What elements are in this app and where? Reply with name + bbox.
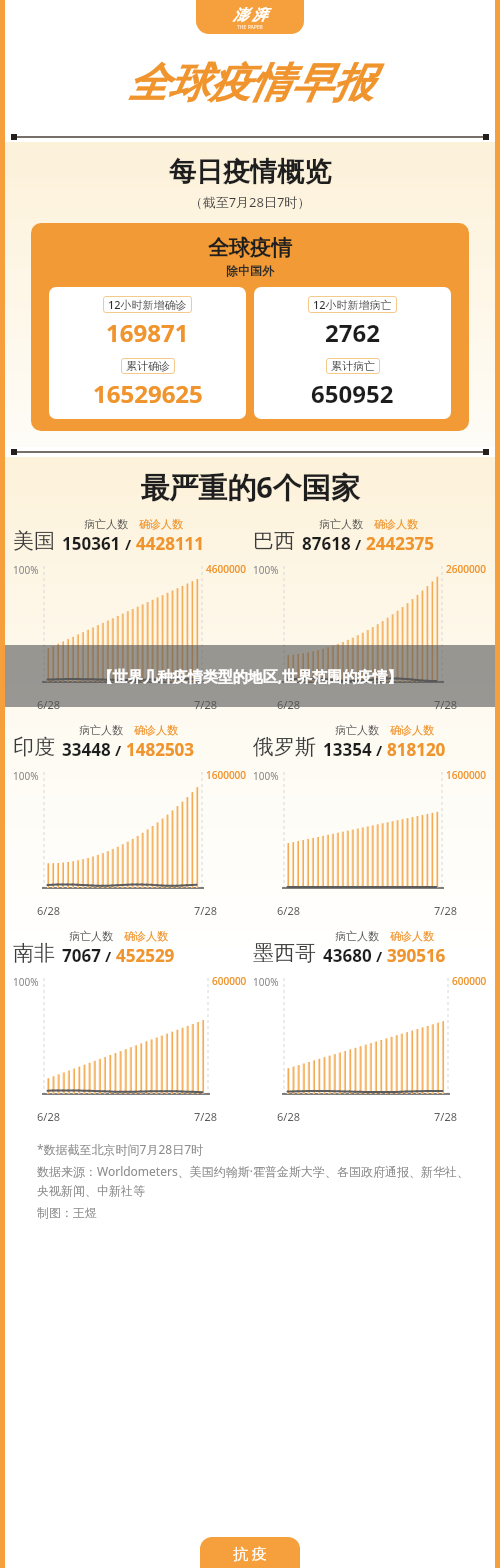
staticText: 7/28 — [434, 697, 457, 712]
staticText: 每日疫情概览 — [5, 155, 495, 189]
staticText: 确诊人数 — [124, 929, 168, 943]
staticText: 6/28 — [37, 1109, 60, 1124]
staticText: 100% — [13, 563, 39, 577]
staticText: 制图：王煜 — [37, 1205, 97, 1220]
staticText: 4428111 — [136, 532, 205, 555]
staticText: 累计确诊 — [126, 359, 170, 373]
staticText: 43680 — [323, 944, 372, 967]
staticText: 650952 — [311, 377, 394, 410]
staticText: 818120 — [387, 738, 446, 761]
staticText: / — [101, 946, 116, 966]
staticText: 2600000 — [446, 562, 487, 576]
staticText: 6/28 — [37, 697, 60, 712]
staticText: 169871 — [106, 316, 189, 349]
staticText: 100% — [253, 975, 279, 989]
staticText: 13354 — [323, 738, 372, 761]
staticText: 抗 疫 — [233, 1543, 267, 1563]
staticText: / — [351, 534, 366, 554]
staticText: 印度 — [13, 734, 55, 760]
staticText: 2762 — [325, 316, 380, 349]
staticText: 【世界几种疫情类型的地区,世界范围的疫情】 — [33, 666, 467, 686]
staticText: 确诊人数 — [134, 723, 178, 737]
staticText: 病亡人数 — [84, 517, 128, 531]
staticText: 除中国外 — [226, 263, 274, 278]
staticText: 确诊人数 — [374, 517, 418, 531]
staticText: 100% — [253, 769, 279, 783]
button[interactable]: 全球疫情 — [31, 223, 469, 431]
button[interactable]: 澎湃新闻 The Paper — [196, 0, 304, 34]
staticText: THE PAPER — [237, 24, 263, 31]
staticText: / — [111, 740, 126, 760]
staticText: 确诊人数 — [390, 723, 434, 737]
staticText: 87618 — [302, 532, 351, 555]
staticText: 俄罗斯 — [253, 734, 316, 760]
staticText: 全球疫情 — [208, 235, 292, 261]
staticText: 7/28 — [434, 903, 457, 918]
staticText: 7/28 — [194, 697, 217, 712]
staticText: 1600000 — [206, 768, 247, 782]
staticText: *数据截至北京时间7月28日7时 — [37, 1141, 204, 1157]
staticText: 100% — [253, 563, 279, 577]
staticText: 100% — [13, 975, 39, 989]
staticText: 452529 — [116, 944, 175, 967]
staticText: 7/28 — [194, 903, 217, 918]
staticText: 病亡人数 — [335, 929, 379, 943]
staticText: 150361 — [62, 532, 121, 555]
staticText: 全球疫情早报 — [127, 58, 373, 110]
staticText: 巴西 — [253, 528, 295, 554]
staticText: 6/28 — [277, 903, 300, 918]
staticText: 累计病亡 — [331, 359, 375, 373]
staticText: 墨西哥 — [253, 940, 316, 966]
staticText: 600000 — [212, 974, 247, 988]
staticText: 2442375 — [366, 532, 435, 555]
staticText: 7/28 — [194, 1109, 217, 1124]
staticText: 确诊人数 — [139, 517, 183, 531]
staticText: 1482503 — [126, 738, 195, 761]
staticText: 病亡人数 — [335, 723, 379, 737]
staticText: 澎 湃 — [233, 4, 267, 24]
staticText: 病亡人数 — [319, 517, 363, 531]
staticText: 美国 — [13, 528, 55, 554]
staticText: 1600000 — [446, 768, 487, 782]
staticText: 南非 — [13, 940, 55, 966]
staticText: 确诊人数 — [390, 929, 434, 943]
staticText: 数据来源：Worldometers、美国约翰斯·霍普金斯大学、各国政府通报、新华… — [37, 1163, 469, 1199]
staticText: / — [372, 740, 387, 760]
staticText: 7067 — [62, 944, 101, 967]
staticText: 16529625 — [93, 377, 203, 410]
staticText: 600000 — [452, 974, 487, 988]
staticText: 病亡人数 — [79, 723, 123, 737]
button[interactable]: 抗疫 — [200, 1537, 300, 1568]
staticText: 病亡人数 — [69, 929, 113, 943]
staticText: 7/28 — [434, 1109, 457, 1124]
staticText: 4600000 — [206, 562, 247, 576]
staticText: 12小时新增病亡 — [313, 297, 392, 312]
staticText: （截至7月28日7时） — [5, 193, 495, 211]
staticText: 33448 — [62, 738, 111, 761]
staticText: 100% — [13, 769, 39, 783]
staticText: 390516 — [387, 944, 446, 967]
staticText: / — [121, 534, 136, 554]
staticText: / — [372, 946, 387, 966]
staticText: 6/28 — [277, 1109, 300, 1124]
staticText: 6/28 — [277, 697, 300, 712]
staticText: 12小时新增确诊 — [108, 297, 187, 312]
staticText: 6/28 — [37, 903, 60, 918]
staticText: 最严重的6个国家 — [5, 467, 495, 507]
